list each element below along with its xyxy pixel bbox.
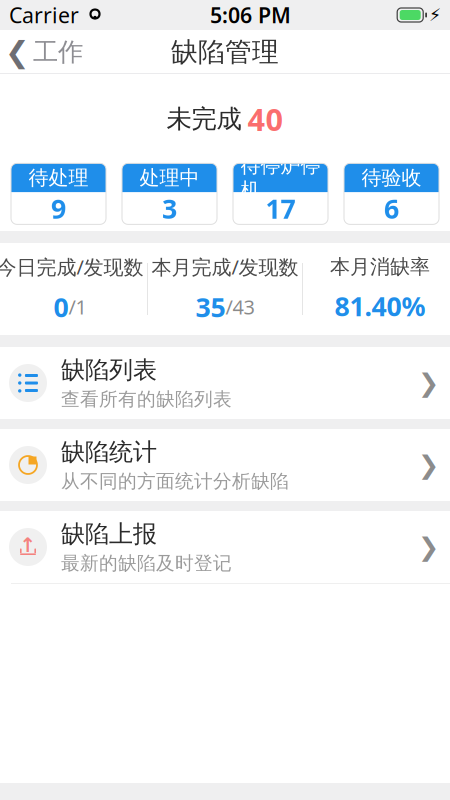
- button[interactable]: 待验收: [344, 163, 439, 224]
- staticText: 5:06 PM: [210, 1, 291, 29]
- staticText: Carrier: [9, 1, 79, 29]
- staticText: 工作: [33, 36, 83, 67]
- staticText: 待处理: [28, 166, 88, 190]
- button[interactable]: ❮: [0, 29, 95, 75]
- button[interactable]: 待停炉停机: [233, 163, 328, 224]
- staticText: 从不同的方面统计分析缺陷: [61, 470, 289, 493]
- staticText: 最新的缺陷及时登记: [61, 552, 232, 575]
- staticText: 35: [195, 289, 225, 324]
- staticText: 待验收: [361, 166, 421, 190]
- button[interactable]: 处理中: [122, 163, 217, 224]
- staticText: 今日完成/发现数: [0, 253, 143, 280]
- staticText: 缺陷统计: [61, 437, 157, 467]
- staticText: ❯: [418, 369, 439, 397]
- button[interactable]: ↑: [0, 511, 450, 583]
- staticText: /1: [68, 293, 86, 320]
- staticText: 待停炉停机: [240, 153, 320, 202]
- staticText: ❯: [418, 451, 439, 479]
- button[interactable]: 缺陷列表: [0, 347, 450, 419]
- button[interactable]: 待处理: [11, 163, 106, 224]
- staticText: 缺陷上报: [61, 519, 157, 549]
- staticText: ↑: [19, 534, 36, 556]
- staticText: 未完成: [166, 103, 241, 134]
- staticText: /43: [225, 293, 254, 320]
- staticText: 81.40%: [334, 288, 425, 323]
- staticText: ❮: [5, 35, 30, 69]
- button[interactable]: 缺陷统计: [0, 429, 450, 501]
- staticText: 40: [247, 99, 283, 139]
- staticText: 17: [265, 191, 295, 226]
- staticText: 本月消缺率: [330, 254, 430, 279]
- staticText: 本月完成/发现数: [151, 253, 298, 280]
- staticText: 6: [384, 191, 399, 226]
- staticText: 处理中: [139, 166, 199, 190]
- staticText: 0: [53, 289, 68, 324]
- staticText: ❯: [418, 533, 439, 561]
- staticText: 缺陷列表: [61, 355, 157, 385]
- staticText: ⚡︎: [429, 5, 441, 25]
- staticText: 3: [162, 191, 177, 226]
- staticText: 查看所有的缺陷列表: [61, 388, 232, 411]
- staticText: 9: [51, 191, 66, 226]
- staticText: 缺陷管理: [171, 36, 279, 68]
